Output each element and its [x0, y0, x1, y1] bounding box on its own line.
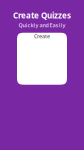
staticText: Create Quizzes	[13, 10, 71, 21]
staticText: Create	[34, 33, 50, 40]
staticText: Quickly and Easily	[18, 22, 65, 29]
